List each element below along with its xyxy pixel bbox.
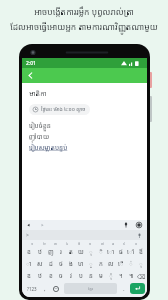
staticText: ក — [99, 260, 103, 268]
button[interactable]: ៅ — [126, 246, 136, 258]
button[interactable]: ច — [56, 270, 66, 282]
button[interactable]: Back — [24, 69, 37, 82]
button[interactable]: ើ — [116, 258, 126, 270]
staticText: ១ — [31, 241, 34, 246]
button[interactable]: Undo — [26, 222, 33, 229]
staticText: , — [44, 285, 46, 293]
button[interactable]: ថ — [56, 258, 66, 270]
button[interactable]: ញ — [45, 246, 56, 258]
button[interactable]: Voice input — [122, 221, 130, 229]
button[interactable]: ិ — [96, 246, 106, 258]
staticText: ល — [108, 260, 114, 268]
staticText: ។ — [119, 272, 123, 280]
staticText: ដែលអាចធ្វើអោយអ្នក តាមការណាវិញ្ញូតណាមួយ — [10, 21, 158, 33]
staticText: ផ — [119, 248, 123, 256]
button[interactable]: ហ — [76, 258, 86, 270]
staticText: ⌫ — [137, 273, 146, 280]
button[interactable]: ុំ — [106, 270, 116, 282]
staticText: ញ៉ាំបាយ — [29, 132, 50, 141]
staticText: ញ — [48, 248, 54, 256]
button[interactable]: យ — [76, 246, 86, 258]
staticText: ៣ — [54, 241, 58, 246]
button[interactable]: ?123 — [24, 283, 40, 294]
button[interactable]: ឪ — [136, 246, 146, 258]
button[interactable]: រ — [56, 246, 66, 258]
staticText: រ — [60, 248, 62, 256]
button[interactable]: ា — [23, 258, 34, 270]
staticText: ុំ — [109, 272, 113, 280]
staticText: ើ — [118, 260, 124, 268]
button[interactable]: ន — [86, 270, 96, 282]
button[interactable]: ⌫ — [136, 270, 146, 282]
staticText: ៅ — [127, 248, 135, 256]
button[interactable]: Redo — [38, 222, 45, 229]
button[interactable]: Space — [64, 283, 117, 294]
staticText: ៩ — [123, 241, 126, 246]
button[interactable]: Emoji — [50, 283, 62, 294]
button[interactable]: ឋ — [34, 246, 45, 258]
button[interactable]: . — [119, 283, 129, 294]
staticText: ច — [59, 272, 63, 280]
staticText: ា — [26, 260, 32, 268]
staticText: មាតិកា — [29, 89, 47, 99]
staticText: ស — [37, 260, 43, 268]
staticText: ៧ — [101, 241, 104, 246]
button[interactable]: ល — [106, 258, 116, 270]
staticText: ហ — [78, 260, 84, 268]
button[interactable]: រៀបសម្អាតបន្ទប់ — [29, 143, 68, 152]
staticText: ថ — [59, 260, 63, 268]
button[interactable]: ់ — [126, 258, 136, 270]
staticText: ៦ — [89, 241, 92, 246]
staticText: ៕ — [129, 272, 134, 280]
button[interactable]: ខ — [45, 270, 56, 282]
button[interactable]: ប — [76, 270, 86, 282]
staticText: ុ — [89, 248, 93, 256]
staticText: អាចបង្កើតការរម្លឹក បុព្វលរាល់ត្រា — [34, 6, 134, 18]
button[interactable]: ក — [96, 258, 106, 270]
staticText: ង — [69, 260, 73, 268]
staticText: រៀបចំខ្លួន — [29, 121, 51, 130]
button[interactable]: វ — [66, 270, 76, 282]
staticText: ថ្ងៃនេះ ម៉ោង ៤:០០ ល្ងាច — [41, 106, 86, 113]
button[interactable]: ថ្ងៃនេះ ម៉ោង ៤:០០ ល្ងាច — [29, 104, 90, 115]
button[interactable]: ុ — [136, 258, 146, 270]
staticText: ិ — [99, 248, 103, 256]
staticText: 2:01 — [26, 60, 36, 67]
staticText: ៥ — [78, 241, 81, 246]
staticText: វ — [70, 272, 72, 280]
staticText: ឌ — [27, 272, 31, 280]
button[interactable]: Enter — [130, 283, 145, 294]
button[interactable]: ។ — [116, 270, 126, 282]
staticText: ់ — [129, 260, 133, 268]
button[interactable]: ដ — [45, 258, 56, 270]
button[interactable]: ម — [96, 270, 106, 282]
staticText: ្ — [89, 260, 93, 268]
staticText: ៨ — [112, 241, 115, 246]
staticText: ន — [89, 272, 93, 280]
staticText: ឧ — [27, 248, 31, 256]
staticText: ០ — [135, 241, 138, 246]
button[interactable]: , — [40, 283, 50, 294]
button[interactable]: ឌ — [23, 270, 34, 282]
button[interactable]: ឋ — [34, 270, 45, 282]
staticText: ខ — [49, 272, 53, 280]
staticText: > — [26, 232, 29, 239]
button[interactable]: ផ — [116, 246, 126, 258]
button[interactable]: ត — [66, 246, 76, 258]
staticText: ម — [99, 272, 103, 280]
button[interactable]: ុ — [86, 246, 96, 258]
staticText: ឋ — [38, 248, 42, 256]
staticText: ២ — [43, 241, 46, 246]
button[interactable]: ្ — [86, 258, 96, 270]
button[interactable]: ស — [34, 258, 45, 270]
button[interactable]: ោ — [106, 246, 116, 258]
button[interactable]: ង — [66, 258, 76, 270]
staticText: . — [123, 285, 125, 293]
button[interactable]: Settings — [135, 221, 143, 229]
button[interactable]: Voice — [136, 232, 143, 239]
staticText: ោ — [107, 248, 115, 256]
staticText: ុ — [139, 260, 143, 268]
staticText: ឪ — [139, 248, 143, 256]
button[interactable]: ៕ — [126, 270, 136, 282]
button[interactable]: ឧ — [23, 246, 34, 258]
